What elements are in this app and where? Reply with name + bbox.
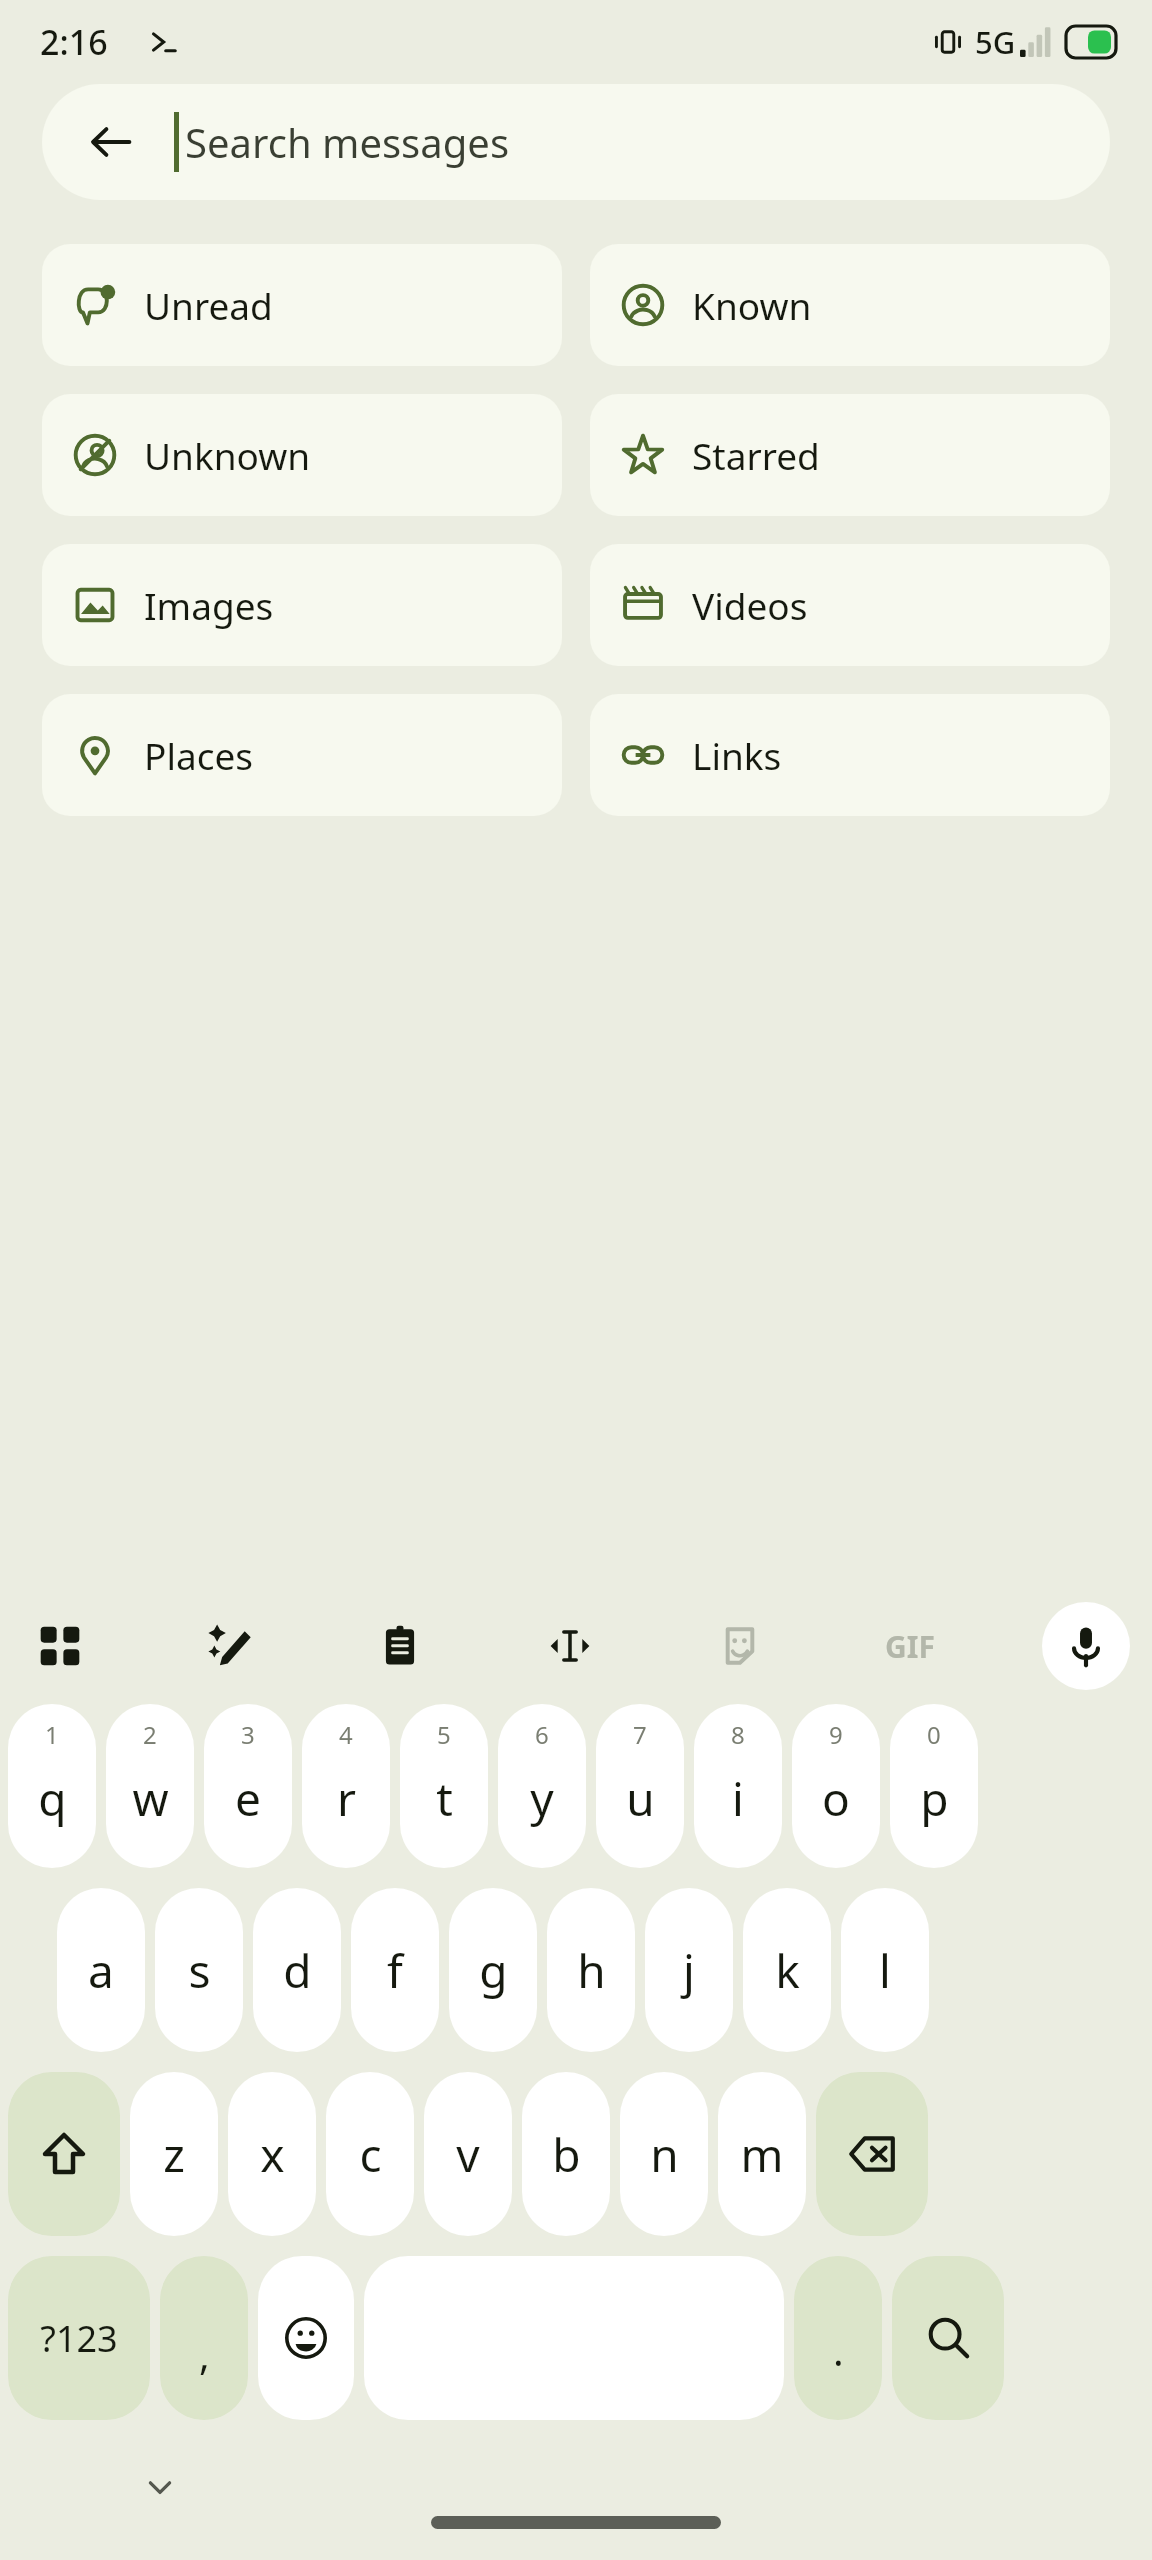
button[interactable]: Hide keyboard <box>130 2458 190 2516</box>
button[interactable]: Period <box>794 2256 882 2420</box>
staticText: GIF <box>885 1626 935 1667</box>
staticText: Images <box>144 580 274 630</box>
button[interactable]: Search <box>892 2256 1004 2420</box>
button[interactable]: k <box>743 1888 831 2052</box>
staticText: l <box>879 1939 891 2002</box>
staticText: 5 <box>437 1718 451 1751</box>
button[interactable]: Unknown <box>42 394 562 516</box>
staticText: i <box>732 1767 744 1830</box>
button[interactable]: x <box>228 2072 316 2236</box>
staticText: m <box>740 2123 784 2186</box>
button[interactable]: 8 <box>694 1704 782 1868</box>
button[interactable]: Videos <box>590 544 1110 666</box>
staticText: Unknown <box>144 430 311 480</box>
staticText: x <box>260 2123 285 2186</box>
button[interactable]: Unread <box>42 244 562 366</box>
button[interactable]: 6 <box>498 1704 586 1868</box>
staticText: 3 <box>241 1718 255 1751</box>
button[interactable]: l <box>841 1888 929 2052</box>
staticText: 2 <box>143 1718 157 1751</box>
staticText: g <box>479 1939 508 2002</box>
staticText: 1 <box>45 1718 59 1751</box>
button[interactable]: ?123 <box>8 2256 150 2420</box>
button[interactable]: a <box>57 1888 145 2052</box>
button[interactable]: z <box>130 2072 218 2236</box>
button[interactable]: d <box>253 1888 341 2052</box>
staticText: Links <box>692 730 782 780</box>
button[interactable]: Clipboard <box>362 1608 438 1684</box>
staticText: v <box>456 2123 480 2186</box>
staticText: 8 <box>731 1718 745 1751</box>
staticText: u <box>626 1767 655 1830</box>
staticText: Videos <box>692 580 808 630</box>
staticText: t <box>436 1767 453 1830</box>
staticText: w <box>132 1767 169 1830</box>
button[interactable]: Places <box>42 694 562 816</box>
button[interactable]: Voice input <box>1042 1602 1130 1690</box>
button[interactable]: n <box>620 2072 708 2236</box>
staticText: h <box>577 1939 606 2002</box>
staticText: 5G <box>975 21 1016 63</box>
staticText: 9 <box>829 1718 843 1751</box>
button[interactable]: Emoji <box>258 2256 354 2420</box>
staticText: 7 <box>633 1718 647 1751</box>
button[interactable]: Back <box>42 84 1110 200</box>
button[interactable]: j <box>645 1888 733 2052</box>
staticText: n <box>650 2123 679 2186</box>
button[interactable]: 5 <box>400 1704 488 1868</box>
staticText: q <box>38 1767 67 1830</box>
button[interactable]: 9 <box>792 1704 880 1868</box>
button[interactable]: Images <box>42 544 562 666</box>
staticText: s <box>188 1939 211 2002</box>
staticText: Starred <box>692 430 820 480</box>
button[interactable]: 1 <box>8 1704 96 1868</box>
staticText: a <box>88 1939 114 2002</box>
button[interactable]: 2 <box>106 1704 194 1868</box>
staticText: Places <box>144 730 254 780</box>
staticText: j <box>683 1939 695 2002</box>
button[interactable]: Backspace <box>816 2072 928 2236</box>
button[interactable]: GIF <box>872 1608 948 1684</box>
staticText: Search messages <box>185 115 510 169</box>
button[interactable]: Links <box>590 694 1110 816</box>
staticText: Known <box>692 280 812 330</box>
staticText: 6 <box>535 1718 549 1751</box>
staticText: b <box>552 2123 581 2186</box>
staticText: r <box>337 1767 356 1830</box>
button[interactable]: 7 <box>596 1704 684 1868</box>
staticText: o <box>822 1767 850 1830</box>
staticText: . <box>833 2323 844 2377</box>
button[interactable]: g <box>449 1888 537 2052</box>
button[interactable]: b <box>522 2072 610 2236</box>
button[interactable]: f <box>351 1888 439 2052</box>
button[interactable]: Shift <box>8 2072 120 2236</box>
button[interactable]: Known <box>590 244 1110 366</box>
button[interactable]: h <box>547 1888 635 2052</box>
staticText: d <box>283 1939 312 2002</box>
button[interactable]: Comma <box>160 2256 248 2420</box>
staticText: z <box>163 2123 185 2186</box>
staticText: Unread <box>144 280 273 330</box>
button[interactable]: Keyboard modes <box>22 1608 98 1684</box>
staticText: e <box>235 1767 261 1830</box>
button[interactable]: Text editing <box>532 1608 608 1684</box>
button[interactable]: m <box>718 2072 806 2236</box>
staticText: y <box>530 1767 554 1830</box>
staticText: c <box>359 2123 382 2186</box>
button[interactable]: c <box>326 2072 414 2236</box>
button[interactable]: Stickers <box>702 1608 778 1684</box>
button[interactable]: 0 <box>890 1704 978 1868</box>
staticText: k <box>775 1939 800 2002</box>
staticText: 0 <box>927 1718 941 1751</box>
button[interactable]: Starred <box>590 394 1110 516</box>
staticText: 2:16 <box>40 19 108 65</box>
button[interactable]: v <box>424 2072 512 2236</box>
button[interactable]: s <box>155 1888 243 2052</box>
button[interactable]: Space <box>364 2256 784 2420</box>
button[interactable]: Writing tools <box>192 1608 268 1684</box>
button[interactable]: 4 <box>302 1704 390 1868</box>
staticText: , <box>199 2327 210 2381</box>
button[interactable]: 3 <box>204 1704 292 1868</box>
staticText: 4 <box>339 1718 353 1751</box>
button[interactable]: Back <box>84 115 138 169</box>
